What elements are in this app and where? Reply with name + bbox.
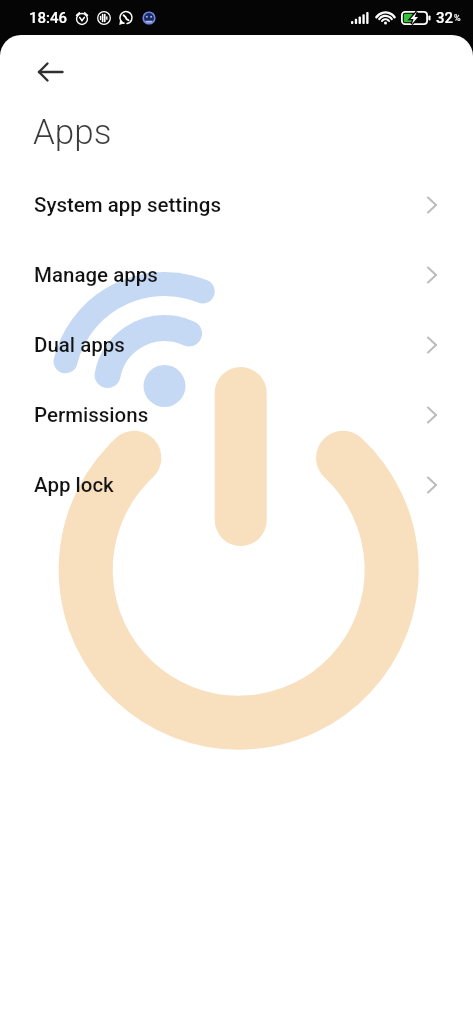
staticText: Permissions (34, 403, 149, 427)
button[interactable]: Back (25, 45, 77, 97)
staticText: 18:46 (29, 9, 68, 27)
button[interactable]: System app settings (0, 170, 473, 240)
button[interactable]: Manage apps (0, 240, 473, 310)
button[interactable]: App lock (0, 450, 473, 520)
staticText: 32 (436, 9, 454, 27)
staticText: Manage apps (34, 263, 158, 287)
staticText: System app settings (34, 193, 221, 217)
staticText: % (454, 13, 461, 24)
staticText: Dual apps (34, 333, 125, 357)
staticText: App lock (34, 473, 114, 497)
button[interactable]: Dual apps (0, 310, 473, 380)
staticText: Apps (33, 112, 112, 153)
button[interactable]: Permissions (0, 380, 473, 450)
